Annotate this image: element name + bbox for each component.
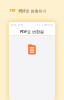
staticText: PDF	[10, 9, 15, 13]
staticText: PDF로 변환됨	[20, 29, 44, 34]
staticText: 1 / 1 페이지	[36, 23, 53, 26]
staticText: PDF로 변환하기	[18, 8, 46, 14]
button[interactable]: PDF	[10, 9, 15, 13]
staticText: 문서 미리	[11, 23, 24, 26]
